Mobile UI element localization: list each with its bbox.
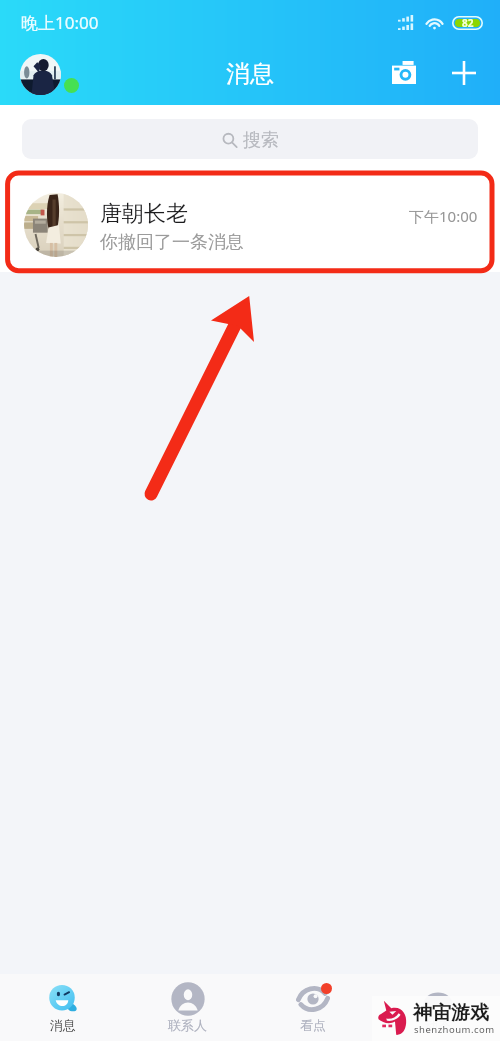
button[interactable]: Profile avatar [20,54,61,95]
button[interactable]: 搜索 [22,119,478,159]
button[interactable]: 消息 [0,974,125,1041]
staticText: 唐朝长老 [100,200,188,228]
staticText: 消息 [226,59,274,89]
staticText: 联系人 [168,1017,207,1033]
staticText: 晚上10:00 [21,11,99,34]
button[interactable]: Add [441,52,487,98]
staticText: 动态 [425,1017,451,1033]
staticText: 搜索 [243,129,279,152]
staticText: 下午10:00 [409,206,478,226]
staticText: 你撤回了一条消息 [100,231,244,254]
staticText: 消息 [50,1017,76,1033]
button[interactable]: 看点 [250,974,375,1041]
button[interactable]: 动态 [375,974,500,1041]
button[interactable]: Camera [383,52,429,98]
staticText: 82 [462,16,474,30]
staticText: 神宙游戏 [413,1001,489,1025]
button[interactable]: 唐朝长老 [0,172,500,272]
staticText: shenzhoum.com [414,1023,495,1036]
staticText: 看点 [300,1017,326,1033]
button[interactable]: 联系人 [125,974,250,1041]
